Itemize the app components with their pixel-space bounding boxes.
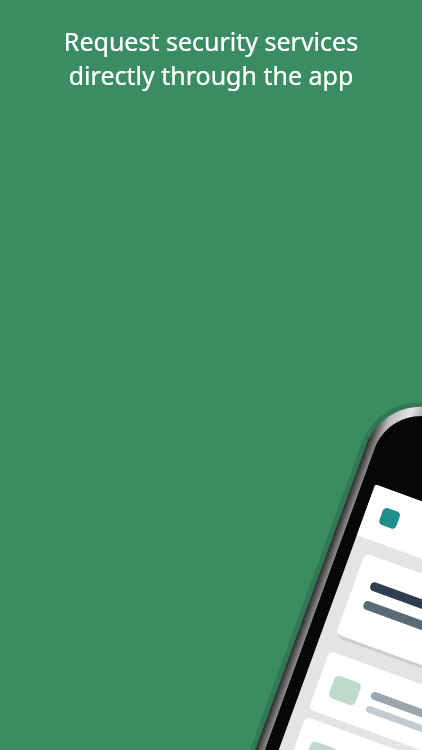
staticText: Request security services <box>20 24 402 58</box>
button[interactable]: Request security services <box>20 24 402 92</box>
other: App preview on phone <box>0 0 422 750</box>
staticText: directly through the app <box>20 58 402 92</box>
